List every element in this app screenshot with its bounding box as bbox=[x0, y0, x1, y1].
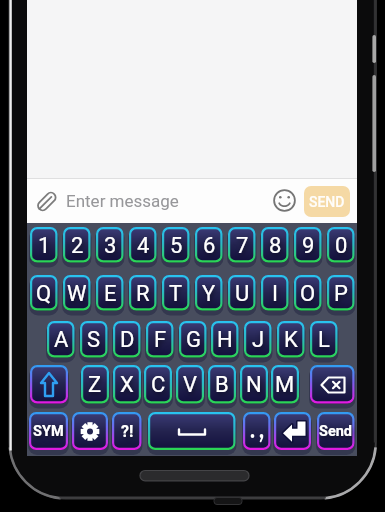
staticText: Y bbox=[202, 281, 216, 307]
button[interactable]: Enter message bbox=[66, 179, 266, 223]
staticText: 6 bbox=[203, 233, 216, 259]
button[interactable]: P bbox=[324, 272, 358, 315]
staticText: L bbox=[318, 327, 330, 353]
staticText: T bbox=[169, 281, 183, 307]
button[interactable]: 8 bbox=[258, 224, 292, 267]
staticText: U bbox=[235, 281, 250, 307]
button[interactable]: 1 bbox=[27, 224, 61, 267]
button[interactable]: T bbox=[159, 272, 193, 315]
button[interactable]: K bbox=[274, 318, 308, 362]
staticText: D bbox=[120, 327, 135, 353]
staticText: B bbox=[215, 372, 229, 398]
staticText: Send bbox=[319, 423, 353, 440]
staticText: Enter message bbox=[66, 191, 179, 211]
button[interactable] bbox=[307, 362, 358, 408]
button[interactable] bbox=[27, 362, 71, 408]
staticText: 8 bbox=[269, 233, 282, 259]
button[interactable]: V bbox=[173, 362, 207, 408]
button[interactable]: B bbox=[205, 362, 239, 408]
button[interactable]: W bbox=[60, 272, 94, 315]
staticText: SYM bbox=[33, 423, 64, 440]
button[interactable]: X bbox=[110, 362, 144, 408]
staticText: 0 bbox=[335, 233, 348, 259]
button[interactable]: E bbox=[93, 272, 127, 315]
staticText: I bbox=[272, 281, 278, 307]
staticText: 5 bbox=[170, 233, 183, 259]
button[interactable]: G bbox=[176, 318, 210, 362]
button[interactable]: C bbox=[141, 362, 175, 408]
staticText: 1 bbox=[38, 233, 51, 259]
button[interactable]: 5 bbox=[159, 224, 193, 267]
button[interactable]: 9 bbox=[291, 224, 325, 267]
button[interactable]: SEND bbox=[304, 186, 350, 217]
button[interactable]: Send bbox=[314, 409, 358, 454]
button[interactable]: O bbox=[291, 272, 325, 315]
button[interactable]: Z bbox=[78, 362, 112, 408]
button[interactable] bbox=[69, 409, 111, 454]
staticText: M bbox=[275, 372, 295, 398]
staticText: W bbox=[67, 281, 87, 307]
button[interactable]: 2 bbox=[60, 224, 94, 267]
staticText: G bbox=[186, 327, 201, 353]
staticText: Z bbox=[88, 372, 102, 398]
button[interactable]: D bbox=[110, 318, 144, 362]
button[interactable]: S bbox=[77, 318, 111, 362]
staticText: V bbox=[183, 372, 198, 398]
staticText: O bbox=[300, 281, 316, 307]
staticText: 3 bbox=[104, 233, 117, 259]
button[interactable]: 3 bbox=[93, 224, 127, 267]
button[interactable] bbox=[240, 409, 274, 454]
staticText: A bbox=[54, 327, 69, 353]
button[interactable]: A bbox=[44, 318, 78, 362]
button[interactable]: I bbox=[258, 272, 292, 315]
button[interactable]: 6 bbox=[192, 224, 226, 267]
staticText: 7 bbox=[236, 233, 249, 259]
button[interactable] bbox=[271, 409, 314, 454]
staticText: SEND bbox=[309, 194, 345, 210]
staticText: C bbox=[151, 372, 166, 398]
staticText: S bbox=[87, 327, 101, 353]
staticText: Q bbox=[36, 281, 52, 307]
staticText: R bbox=[136, 281, 150, 307]
button[interactable] bbox=[33, 187, 61, 215]
staticText: H bbox=[217, 327, 233, 353]
staticText: F bbox=[154, 327, 167, 353]
button[interactable]: 7 bbox=[225, 224, 259, 267]
staticText: P bbox=[334, 281, 348, 307]
button[interactable] bbox=[145, 409, 239, 454]
button[interactable]: M bbox=[268, 362, 302, 408]
staticText: 9 bbox=[302, 233, 315, 259]
staticText: N bbox=[246, 372, 262, 398]
staticText: E bbox=[104, 281, 117, 307]
button[interactable]: 0 bbox=[324, 224, 358, 267]
button[interactable]: J bbox=[241, 318, 275, 362]
button[interactable] bbox=[272, 188, 297, 213]
button[interactable]: U bbox=[225, 272, 259, 315]
staticText: 2 bbox=[71, 233, 84, 259]
staticText: K bbox=[284, 327, 298, 353]
button[interactable]: 4 bbox=[126, 224, 160, 267]
staticText: ?! bbox=[121, 422, 134, 441]
button[interactable]: N bbox=[237, 362, 271, 408]
button[interactable]: Q bbox=[27, 272, 61, 315]
button[interactable]: L bbox=[307, 318, 341, 362]
button[interactable]: R bbox=[126, 272, 160, 315]
staticText: 4 bbox=[137, 233, 150, 259]
button[interactable]: H bbox=[208, 318, 242, 362]
button[interactable]: F bbox=[143, 318, 177, 362]
staticText: X bbox=[120, 372, 134, 398]
staticText: J bbox=[252, 327, 265, 353]
button[interactable]: ?! bbox=[109, 409, 145, 454]
button[interactable]: SYM bbox=[26, 409, 71, 454]
button[interactable]: Y bbox=[192, 272, 226, 315]
